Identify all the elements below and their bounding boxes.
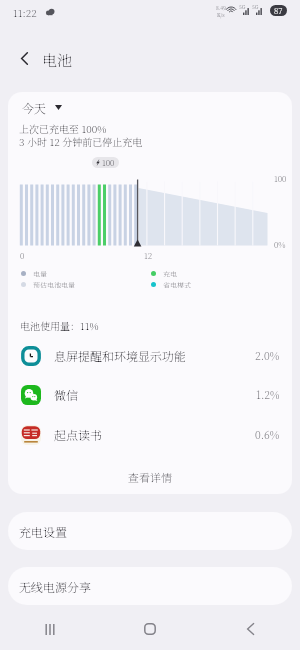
staticText: 11:22 <box>13 5 37 19</box>
staticText: 今天 <box>22 99 47 116</box>
button[interactable]: 息屏提醒和环境显示功能 <box>8 336 292 375</box>
staticText: 预估电池电量 <box>33 280 75 288</box>
button[interactable]: Home <box>100 608 200 650</box>
staticText: 电池 <box>42 49 73 71</box>
staticText: 微信 <box>54 386 256 403</box>
button[interactable]: Recent apps <box>0 608 100 650</box>
staticText: 电量 <box>33 269 47 277</box>
staticText: 5G <box>239 3 246 10</box>
staticText: 12 <box>144 250 153 261</box>
staticText: 0% <box>274 239 286 250</box>
staticText: 0 <box>20 250 25 261</box>
staticText: 查看详情 <box>128 469 172 485</box>
staticText: 100 <box>102 157 115 168</box>
staticText: 起点读书 <box>54 426 255 443</box>
button[interactable]: 无线电源分享 <box>8 567 292 605</box>
staticText: K/s <box>217 11 225 18</box>
staticText: 3 小时 12 分钟前已停止充电 <box>19 134 143 148</box>
staticText: 87 <box>274 5 283 16</box>
staticText: 2.0% <box>255 348 280 363</box>
staticText: 充电设置 <box>19 523 68 540</box>
button[interactable]: 充电设置 <box>8 512 292 550</box>
button[interactable]: Back <box>200 608 300 650</box>
staticText: 1.2% <box>256 387 280 402</box>
staticText: 0.6% <box>255 427 280 442</box>
staticText: 省电模式 <box>163 280 191 288</box>
staticText: 充电 <box>163 269 177 277</box>
button[interactable]: Back <box>11 45 37 71</box>
staticText: 8.49 <box>216 4 226 11</box>
button[interactable]: 起点读书 <box>8 415 292 454</box>
button[interactable]: 微信 <box>8 375 292 414</box>
staticText: 5G <box>252 3 259 10</box>
staticText: 息屏提醒和环境显示功能 <box>54 347 255 364</box>
staticText: 上次已充电至 100% <box>19 121 107 135</box>
staticText: 100 <box>274 173 287 184</box>
button[interactable]: 查看详情 <box>8 463 292 491</box>
staticText: 无线电源分享 <box>19 578 92 595</box>
staticText: 电池使用量：11% <box>20 318 99 332</box>
